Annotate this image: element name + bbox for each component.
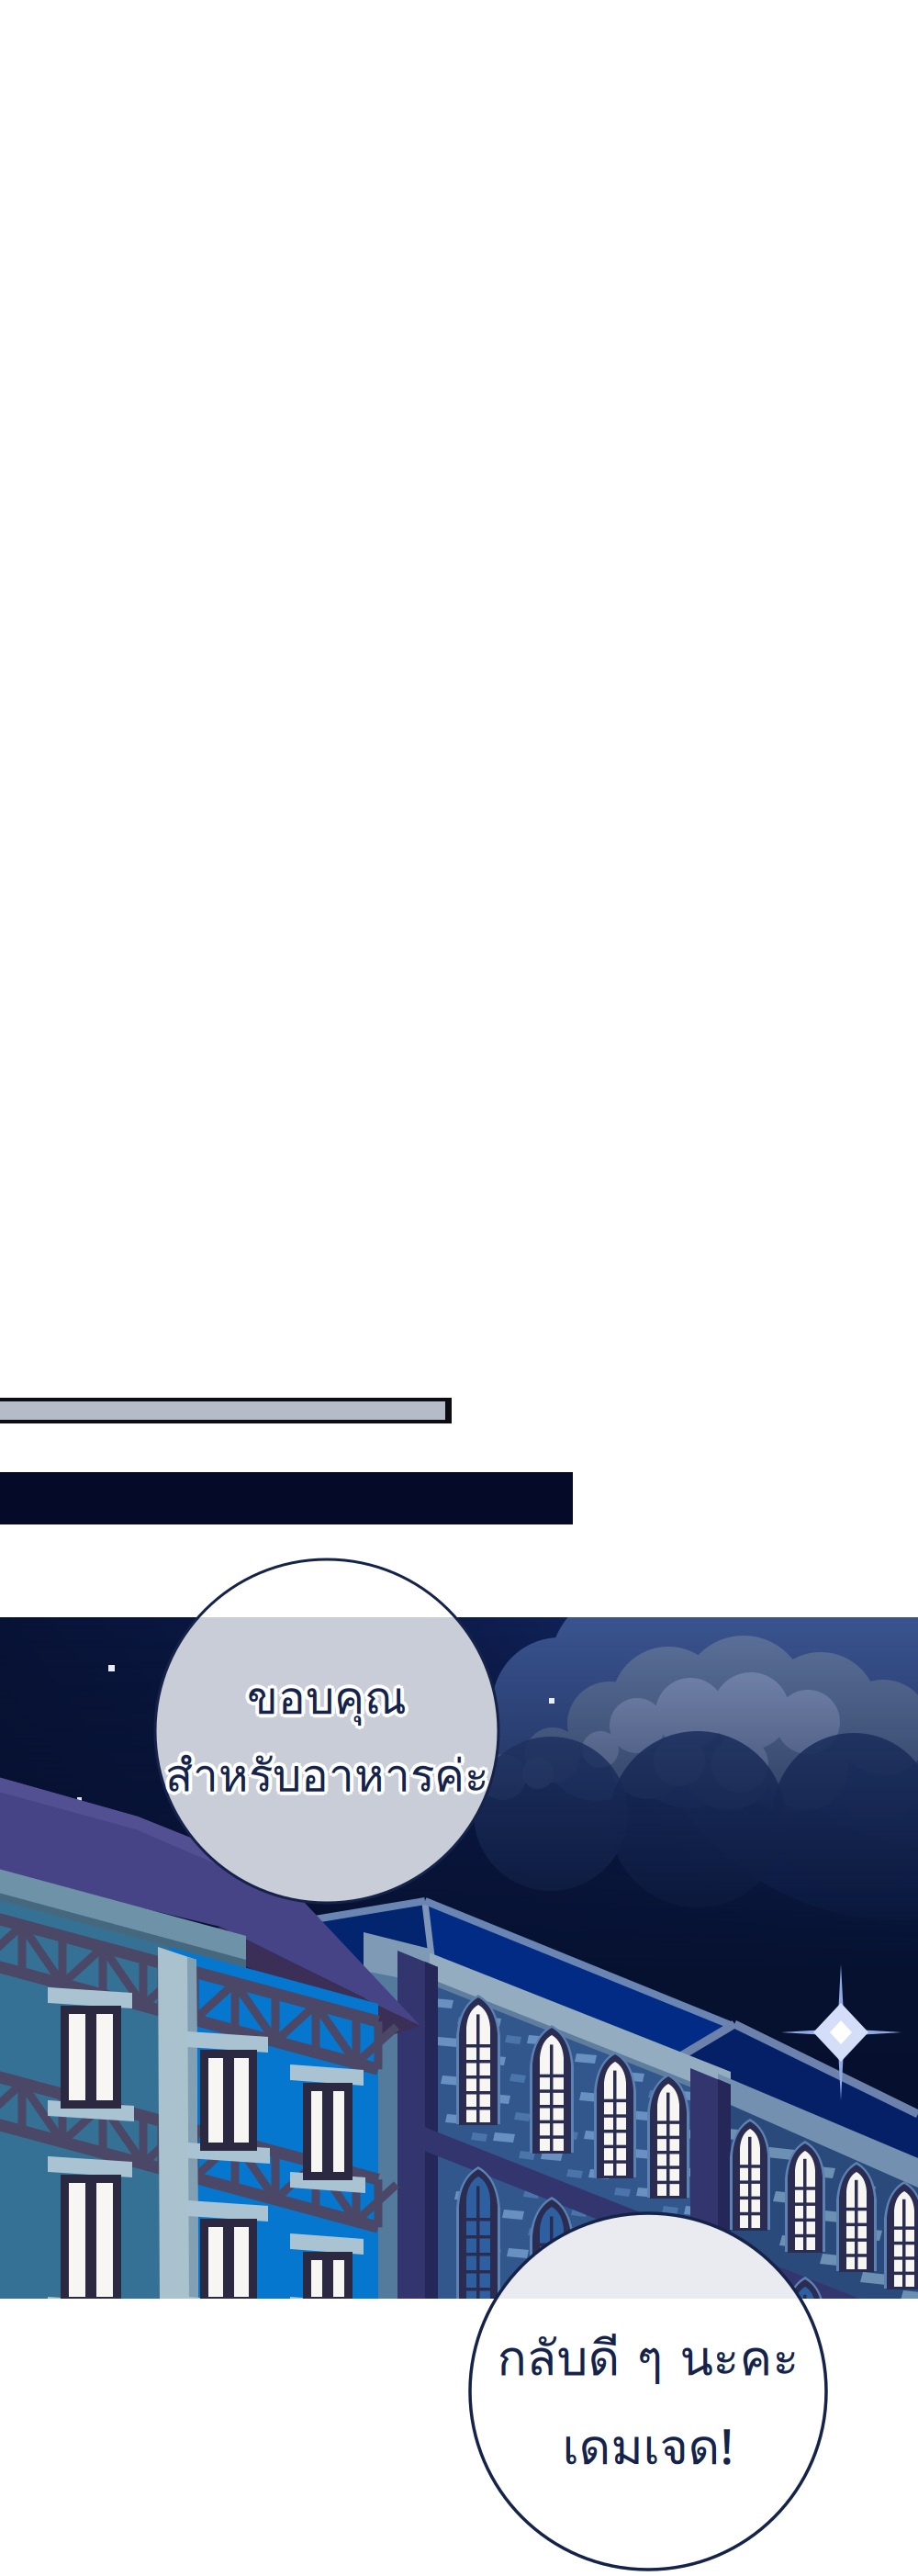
staticText: สำหรับอาหารค่ะ [165, 1744, 488, 1814]
staticText: สำหรับอาหารค่ะ [163, 1743, 486, 1813]
staticText: ขอบคุณ [244, 1660, 404, 1730]
staticText: ขอบคุณ [243, 1663, 403, 1733]
staticText: ขอบคุณ [251, 1663, 410, 1733]
staticText: เดมเจด! [562, 2409, 734, 2485]
staticText: สำหรับอาหารค่ะ [165, 1740, 488, 1810]
staticText: ขอบคุณ [244, 1665, 404, 1736]
staticText: สำหรับอาหารค่ะ [165, 1737, 488, 1807]
staticText: สำหรับอาหารค่ะ [162, 1740, 485, 1810]
staticText: ขอบคุณ [247, 1666, 407, 1737]
staticText: กลับดี ๆ นะคะ [497, 2320, 799, 2396]
staticText: ขอบคุณ [247, 1663, 407, 1733]
staticText: สำหรับอาหารค่ะ [168, 1743, 491, 1813]
staticText: ขอบคุณ [250, 1665, 409, 1736]
staticText: ขอบคุณ [250, 1660, 409, 1730]
staticText: สำหรับอาหารค่ะ [168, 1738, 491, 1808]
staticText: ขอบคุณ [247, 1659, 407, 1729]
staticText: สำหรับอาหารค่ะ [163, 1738, 486, 1808]
staticText: สำหรับอาหารค่ะ [169, 1740, 492, 1810]
